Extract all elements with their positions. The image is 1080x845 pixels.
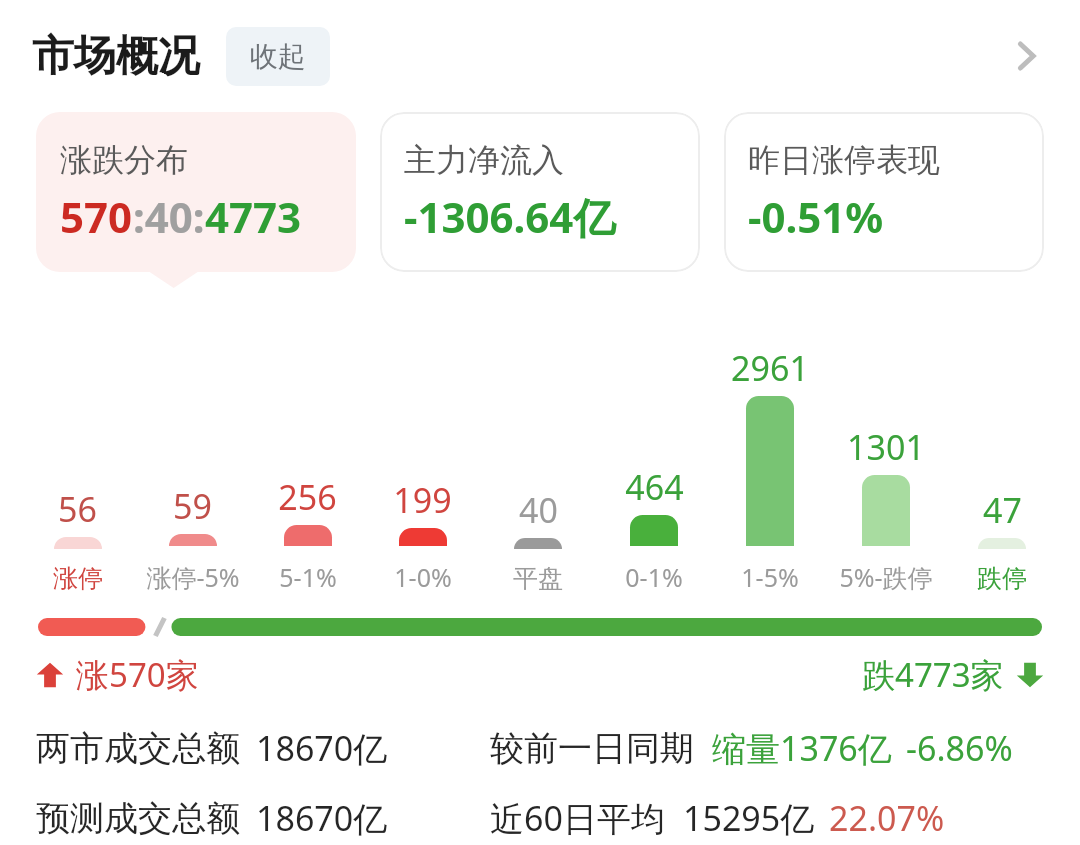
staticText: -1306.64亿 [404, 188, 616, 245]
staticText: 预测成交总额 [36, 797, 240, 840]
button[interactable]: 两市成交总额 [36, 725, 1044, 771]
button[interactable]: 昨日涨停表现 [724, 112, 1044, 272]
staticText: 47 [983, 487, 1022, 533]
staticText: 近60日平均 [490, 795, 665, 841]
button[interactable]: 涨跌分布 [36, 112, 356, 272]
staticText: 4773 [205, 188, 302, 245]
staticText: 40 [519, 487, 558, 533]
staticText: 5-1% [279, 560, 337, 594]
staticText: 市场概况 [32, 30, 200, 83]
button[interactable]: 464 [596, 464, 712, 594]
button[interactable]: 收起 [226, 27, 330, 86]
staticText: 涨570家 [76, 652, 199, 697]
staticText: 22.07% [829, 795, 945, 841]
button[interactable]: 47 [944, 487, 1060, 594]
staticText: 1-0% [394, 560, 452, 594]
button[interactable]: 199 [365, 477, 480, 594]
button[interactable]: 1301 [828, 424, 944, 594]
staticText: 1-5% [741, 560, 799, 594]
staticText: :40: [133, 188, 205, 245]
button[interactable]: 56 [20, 486, 135, 594]
staticText: 0-1% [625, 560, 683, 594]
staticText: 两市成交总额 [36, 727, 240, 770]
staticText: 平盘 [513, 563, 563, 594]
staticText: 464 [625, 464, 684, 510]
button[interactable]: 40 [480, 487, 596, 594]
staticText: 跌4773家 [862, 652, 1004, 697]
staticText: 18670亿 [256, 795, 388, 841]
staticText: 昨日涨停表现 [748, 140, 940, 180]
staticText: 56 [58, 486, 97, 532]
staticText: 59 [173, 483, 212, 529]
staticText: 570 [60, 188, 133, 245]
button[interactable]: 展开更多 [998, 28, 1054, 84]
staticText: 跌停 [977, 563, 1027, 594]
staticText: 收起 [250, 39, 306, 74]
button[interactable]: 主力净流入 [380, 112, 700, 272]
staticText: 2961 [731, 345, 809, 391]
staticText: 缩量1376亿 [712, 725, 892, 771]
staticText: -0.51% [748, 188, 884, 245]
staticText: 较前一日同期 [490, 727, 694, 770]
button[interactable]: 256 [250, 474, 365, 594]
staticText: 涨停-5% [146, 560, 240, 594]
button[interactable]: 预测成交总额 [36, 795, 1044, 841]
staticText: 18670亿 [256, 725, 388, 771]
button[interactable]: 2961 [712, 345, 828, 594]
staticText: 1301 [847, 424, 925, 470]
staticText: 5%-跌停 [839, 560, 933, 594]
staticText: 256 [278, 474, 337, 520]
staticText: 主力净流入 [404, 140, 564, 180]
staticText: 199 [393, 477, 452, 523]
button[interactable]: 59 [135, 483, 250, 594]
staticText: 15295亿 [683, 795, 815, 841]
staticText: -6.86% [906, 725, 1013, 771]
staticText: 涨停 [53, 563, 103, 594]
staticText: 涨跌分布 [60, 140, 188, 180]
button[interactable]: 市场概况 [0, 0, 1080, 112]
